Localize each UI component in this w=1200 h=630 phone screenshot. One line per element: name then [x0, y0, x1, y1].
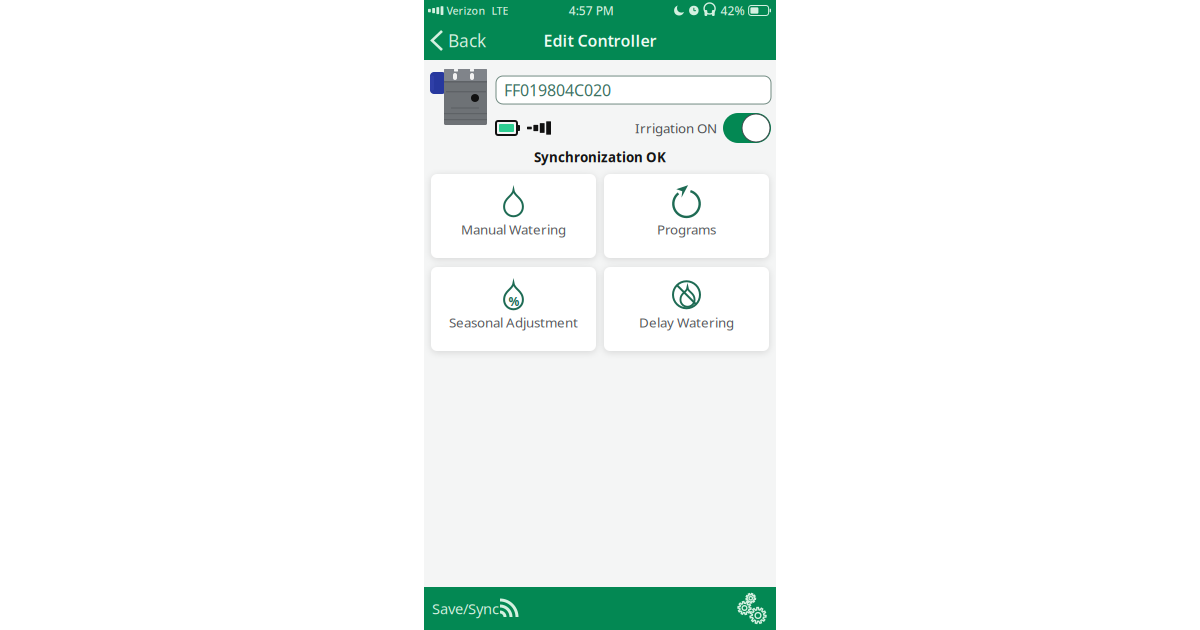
staticText: FF019804C020: [504, 79, 611, 101]
button[interactable]: Irrigation ON toggle: [723, 113, 771, 143]
button[interactable]: %: [431, 267, 596, 351]
button[interactable]: Save/Sync: [424, 587, 528, 630]
staticText: Synchronization OK: [534, 148, 666, 166]
staticText: Back: [448, 29, 486, 52]
button[interactable]: Back: [424, 21, 496, 60]
staticText: %: [508, 293, 519, 309]
staticText: Edit Controller: [543, 30, 656, 51]
button[interactable]: Settings: [725, 587, 776, 630]
staticText: Manual Watering: [461, 220, 566, 238]
staticText: Delay Watering: [639, 313, 734, 331]
button[interactable]: Programs: [604, 174, 769, 258]
button[interactable]: Delay Watering: [604, 267, 769, 351]
button[interactable]: Manual Watering: [431, 174, 596, 258]
staticText: 4:57 PM: [569, 2, 614, 18]
staticText: LTE: [485, 3, 508, 18]
staticText: Irrigation ON: [635, 119, 717, 137]
staticText: 42%: [721, 2, 745, 18]
staticText: Verizon: [443, 3, 485, 18]
staticText: Save/Sync: [432, 599, 499, 618]
staticText: Seasonal Adjustment: [449, 313, 578, 331]
button[interactable]: FF019804C020: [496, 73, 771, 104]
staticText: Programs: [657, 220, 716, 238]
